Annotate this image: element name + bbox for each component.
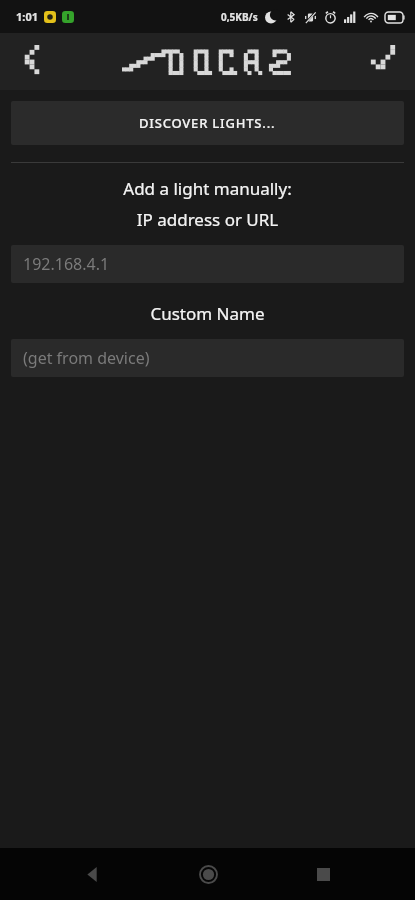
button[interactable]: Recent apps <box>299 850 347 898</box>
staticText: IP address or URL <box>0 208 415 231</box>
staticText: 0,5KB/s <box>221 10 258 24</box>
button[interactable]: DISCOVER LIGHTS... <box>11 101 404 145</box>
button[interactable]: Home <box>184 850 232 898</box>
staticText: Add a light manually: <box>0 177 415 200</box>
staticText: 192.168.4.1 <box>23 253 110 275</box>
staticText: Custom Name <box>0 302 415 325</box>
button[interactable]: Save <box>359 38 407 86</box>
staticText: DISCOVER LIGHTS... <box>139 114 276 132</box>
staticText: (get from device) <box>23 347 150 369</box>
button[interactable]: 192.168.4.1 <box>11 245 404 283</box>
button[interactable]: Back <box>68 850 116 898</box>
button[interactable]: (get from device) <box>11 339 404 377</box>
staticText: 1:01 <box>16 9 38 24</box>
button[interactable]: Navigate up <box>8 38 56 86</box>
